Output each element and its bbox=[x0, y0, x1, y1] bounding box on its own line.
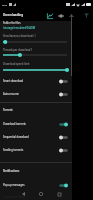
staticText: Pop-up messages bbox=[3, 183, 25, 187]
button[interactable]: Download torrents bbox=[0, 118, 72, 130]
button[interactable]: Seeding torrents bbox=[0, 144, 72, 156]
staticText: Download speed limit bbox=[3, 62, 30, 66]
staticText: Torrent bbox=[3, 108, 13, 112]
button[interactable]: Filter bbox=[81, 10, 92, 21]
button[interactable]: Back bbox=[17, 188, 29, 200]
staticText: Smart download bbox=[3, 79, 24, 83]
button[interactable]: Sort order bbox=[66, 10, 77, 21]
staticText: Simultaneous downloads 1 bbox=[3, 34, 36, 38]
staticText: Seeding torrents bbox=[3, 148, 24, 152]
staticText: Downloading bbox=[3, 13, 24, 17]
button[interactable]: Statistics bbox=[44, 10, 55, 21]
button[interactable]: Auto-resume bbox=[0, 88, 72, 100]
button[interactable]: Sequential download bbox=[0, 131, 72, 143]
button[interactable]: Home bbox=[35, 188, 47, 200]
button[interactable]: Show hidden bbox=[55, 10, 66, 21]
button[interactable]: Recents bbox=[53, 188, 65, 200]
staticText: Sound downloads bbox=[3, 195, 25, 199]
staticText: Auto-resume bbox=[3, 92, 19, 96]
button[interactable]: Pop-up messages bbox=[0, 179, 72, 191]
button[interactable] bbox=[0, 39, 72, 45]
staticText: Folder for files bbox=[3, 21, 21, 25]
staticText: Notifications bbox=[3, 169, 20, 173]
button[interactable]: Smart download bbox=[0, 75, 72, 87]
staticText: /storage/emulated/0/ADM bbox=[3, 26, 36, 30]
staticText: Download torrents bbox=[3, 122, 26, 126]
button[interactable]: Folder for files bbox=[0, 20, 72, 31]
staticText: 3:44 bbox=[2, 3, 7, 6]
button[interactable] bbox=[0, 67, 72, 73]
staticText: Threads per download 1 bbox=[3, 48, 33, 52]
button[interactable] bbox=[0, 52, 72, 58]
staticText: Sequential download bbox=[3, 135, 29, 139]
